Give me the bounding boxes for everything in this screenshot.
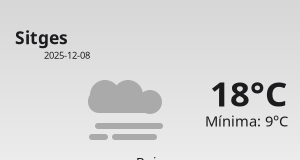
staticText: 18°C bbox=[210, 70, 287, 116]
staticText: Sitges bbox=[15, 26, 68, 49]
staticText: 2025-12-08 bbox=[44, 49, 90, 61]
staticText: Mínima: 9°C bbox=[205, 111, 288, 130]
staticText: Boira bbox=[136, 153, 168, 160]
